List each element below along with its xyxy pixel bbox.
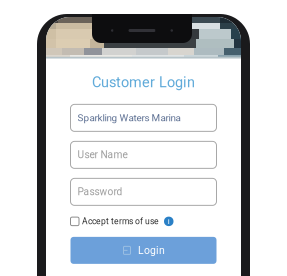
- staticText: Accept terms of use: [82, 216, 159, 226]
- staticText: Customer Login: [92, 74, 195, 91]
- staticText: i: [168, 217, 170, 226]
- button[interactable]: More information about terms of use: [159, 217, 173, 226]
- button[interactable]: Accept terms of use: [70, 216, 159, 226]
- staticText: User Name: [77, 149, 127, 161]
- staticText: Password: [77, 186, 122, 198]
- staticText: Sparkling Waters Marina: [77, 112, 180, 124]
- staticText: Login: [138, 244, 165, 256]
- button[interactable]: Sparkling Waters Marina: [70, 104, 216, 131]
- button[interactable]: User Name: [70, 141, 216, 168]
- button[interactable]: Password: [70, 178, 216, 205]
- button[interactable]: Login: [70, 237, 216, 264]
